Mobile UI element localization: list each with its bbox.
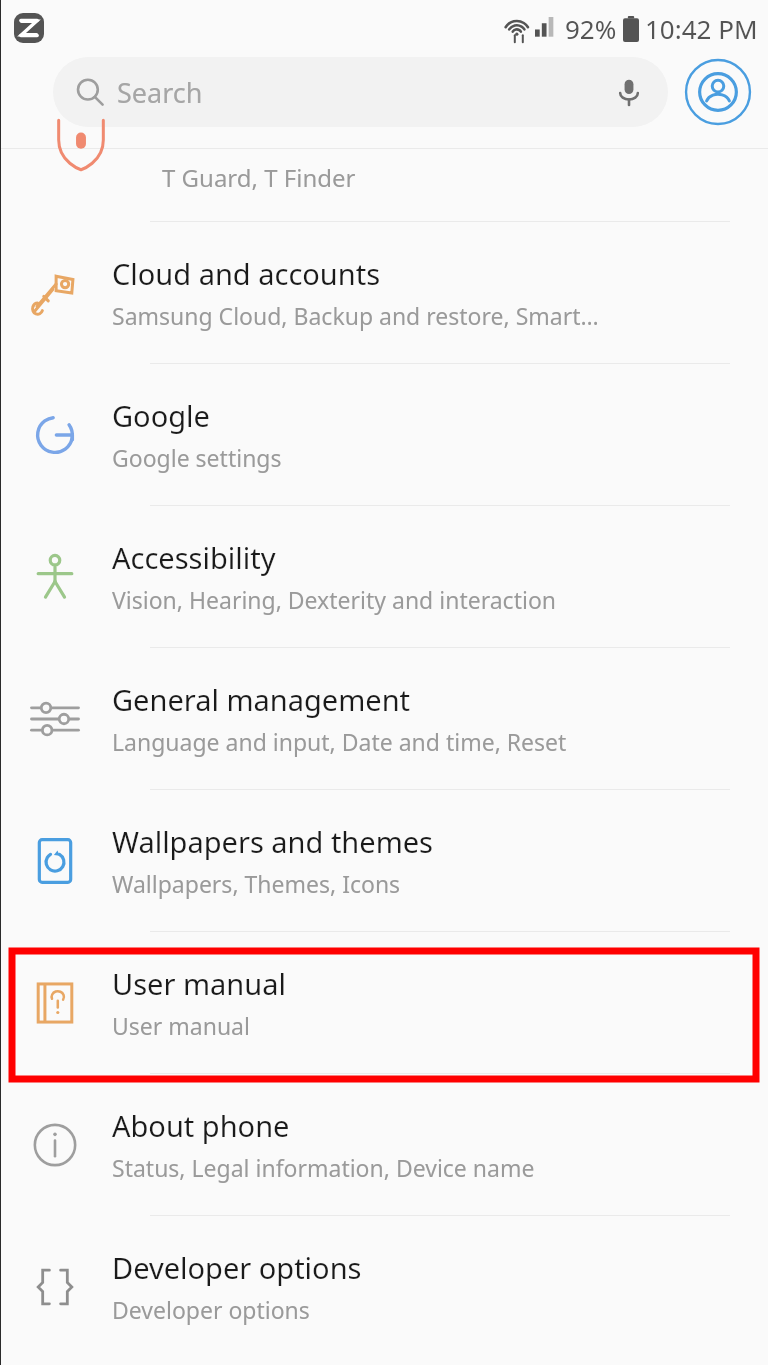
staticText: About phone <box>112 1106 290 1145</box>
staticText: Google <box>112 396 210 435</box>
staticText: Google settings <box>112 442 282 473</box>
button[interactable]: User manual <box>0 932 768 1073</box>
staticText: General management <box>112 680 411 719</box>
staticText: Search <box>117 74 203 111</box>
button[interactable]: Account <box>682 56 754 128</box>
staticText: User manual <box>112 1010 250 1041</box>
staticText: 92% <box>565 11 617 46</box>
button[interactable]: Voice search <box>612 75 646 109</box>
button[interactable]: T Guard, T Finder <box>0 149 768 221</box>
staticText: Status, Legal information, Device name <box>112 1152 535 1183</box>
staticText: User manual <box>112 964 286 1003</box>
staticText: Samsung Cloud, Backup and restore, Smart… <box>112 300 599 331</box>
staticText: Vision, Hearing, Dexterity and interacti… <box>112 584 557 615</box>
staticText: Developer options <box>112 1294 310 1325</box>
staticText: Wallpapers and themes <box>112 822 434 861</box>
button[interactable]: About phone <box>0 1074 768 1215</box>
staticText: Language and input, Date and time, Reset <box>112 726 567 757</box>
button[interactable]: Search <box>53 57 668 127</box>
staticText: Wallpapers, Themes, Icons <box>112 868 401 899</box>
button[interactable]: General management <box>0 648 768 789</box>
staticText: Accessibility <box>112 538 276 577</box>
staticText: Cloud and accounts <box>112 254 381 293</box>
staticText: Developer options <box>112 1248 362 1287</box>
button[interactable]: Accessibility <box>0 506 768 647</box>
staticText: T Guard, T Finder <box>162 161 356 194</box>
button[interactable]: Google <box>0 364 768 505</box>
button[interactable]: Wallpapers and themes <box>0 790 768 931</box>
button[interactable]: Cloud and accounts <box>0 222 768 363</box>
staticText: 10:42 PM <box>645 11 758 46</box>
button[interactable]: Developer options <box>0 1216 768 1357</box>
